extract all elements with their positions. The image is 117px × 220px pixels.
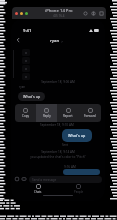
staticText: September 18, 9:14 AM (11, 150, 105, 154)
button[interactable]: Camera (21, 176, 27, 182)
button[interactable]: Copy (15, 104, 36, 122)
button[interactable]: People (66, 183, 90, 195)
button[interactable]: Send a message (29, 176, 102, 183)
button[interactable]: Add attachment (14, 176, 20, 182)
staticText: Chats (34, 190, 42, 194)
button[interactable]: Report (57, 104, 79, 122)
staticText: iPhone 14 Pro (45, 8, 73, 14)
button[interactable]: More options (97, 8, 105, 18)
staticText: Forward (84, 114, 96, 118)
button[interactable]: Back (13, 35, 23, 45)
staticText: ryan (50, 38, 60, 44)
staticText: Copy (22, 114, 30, 118)
staticText: Sent (62, 143, 69, 147)
button[interactable] (63, 169, 100, 175)
staticText: 9:16 AM (64, 165, 76, 169)
button[interactable]: Reply (36, 104, 57, 122)
button[interactable]: ryan (49, 37, 65, 45)
staticText: ryan (19, 85, 26, 89)
staticText: What's up (23, 94, 41, 99)
staticText: > (61, 39, 64, 44)
staticText: you updated the chat's color to "Pitch" (11, 155, 105, 159)
button[interactable]: Forward (79, 104, 101, 122)
staticText: What's up (68, 133, 86, 138)
button[interactable]: Rotate device (81, 8, 89, 18)
staticText: iOS 16.4 (53, 14, 65, 18)
button[interactable]: What's up (62, 129, 92, 142)
staticText: September 18, 9:10 AM (40, 123, 74, 127)
staticText: People (74, 190, 83, 194)
button[interactable]: What's up (18, 92, 45, 101)
button[interactable]: Chats (26, 183, 50, 195)
button[interactable]: Appearance (89, 8, 97, 18)
staticText: Reply (43, 114, 51, 118)
staticText: 9:41 (23, 28, 32, 34)
staticText: September 18, 9:06 AM (11, 80, 105, 84)
staticText: Send a message (32, 178, 57, 182)
staticText: Report (63, 114, 73, 118)
